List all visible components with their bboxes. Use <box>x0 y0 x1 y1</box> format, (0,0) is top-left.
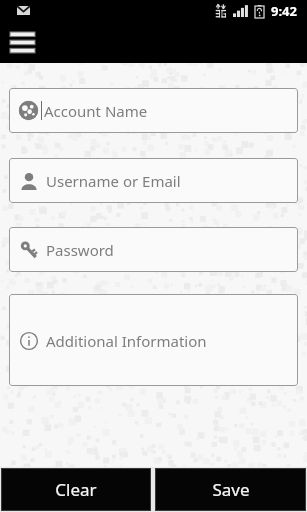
staticText: Save <box>212 478 250 501</box>
staticText: Clear <box>55 478 97 501</box>
staticText: Password <box>46 240 114 260</box>
button[interactable]: Clear <box>1 468 151 511</box>
staticText: Account Name <box>44 101 148 121</box>
staticText: Username or Email <box>46 171 181 191</box>
button[interactable]: Username or Email <box>9 158 298 203</box>
button[interactable]: Menu <box>0 21 44 63</box>
button[interactable]: Account Name <box>9 88 298 133</box>
button[interactable]: Password <box>9 227 298 272</box>
button[interactable]: Save <box>155 468 306 511</box>
button[interactable]: Additional Information <box>9 294 298 386</box>
staticText: Additional Information <box>46 331 207 351</box>
staticText: 9:42 <box>271 2 297 20</box>
